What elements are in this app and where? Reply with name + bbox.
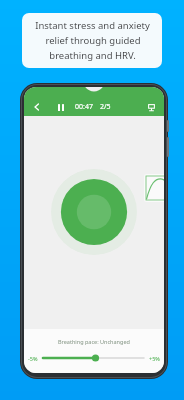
button[interactable]: Pause xyxy=(53,99,69,115)
staticText: -5% xyxy=(28,355,38,362)
staticText: +5% xyxy=(149,355,160,362)
staticText: breathing and HRV. xyxy=(49,49,136,62)
button[interactable]: Breathing pace slider xyxy=(43,352,144,364)
button[interactable]: HRV chart xyxy=(144,174,164,202)
staticText: Instant stress and anxiety xyxy=(35,19,150,32)
staticText: Breathing pace: Unchanged xyxy=(58,338,130,345)
staticText: 00:47 xyxy=(75,102,93,112)
button[interactable]: Session settings xyxy=(143,99,159,115)
button[interactable]: Instant stress and anxiety xyxy=(22,13,162,68)
staticText: relief through guided xyxy=(45,34,141,47)
staticText: 2/5 xyxy=(100,102,111,112)
button[interactable]: Breathing pacer xyxy=(51,169,137,255)
button[interactable]: Back xyxy=(29,99,45,115)
